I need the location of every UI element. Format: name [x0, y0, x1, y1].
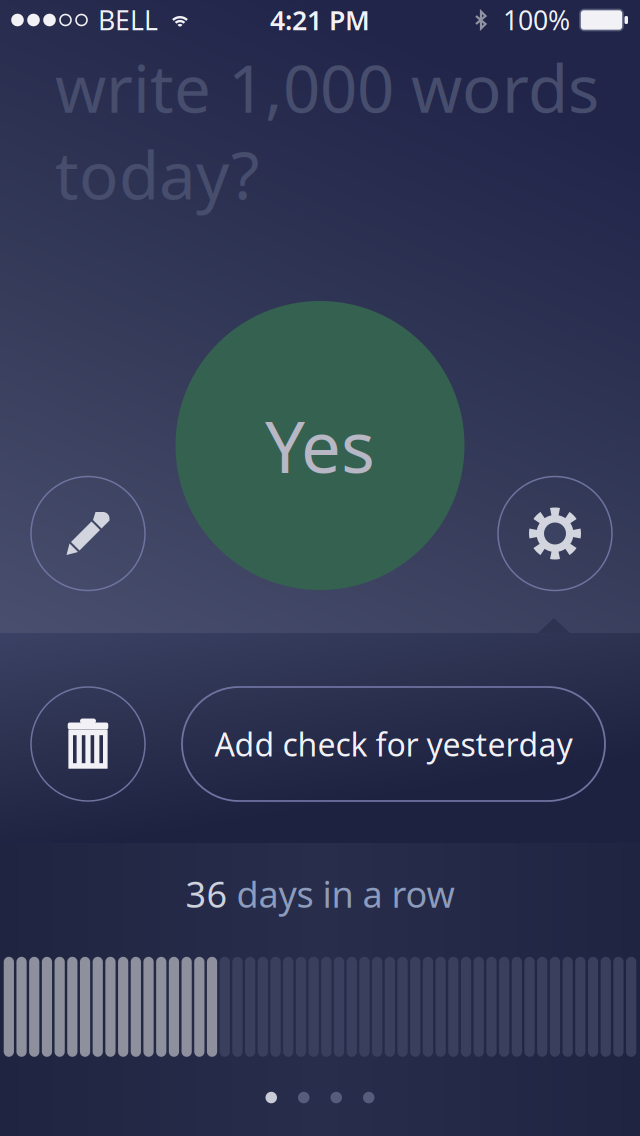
staticText: Add check for yesterday [214, 723, 572, 765]
button[interactable]: Edit habit [31, 476, 145, 590]
staticText: 36 [185, 870, 236, 918]
staticText: days in a row [236, 870, 454, 918]
button[interactable]: Settings [498, 476, 612, 590]
button[interactable]: Add check for yesterday [182, 687, 605, 801]
staticText: write 1,000 words today? [55, 44, 599, 217]
button[interactable]: Delete [31, 687, 145, 801]
staticText: 4:21 PM [270, 2, 370, 38]
staticText: Yes [265, 399, 375, 492]
staticText: 100% [503, 2, 570, 38]
staticText: BELL [98, 2, 158, 38]
